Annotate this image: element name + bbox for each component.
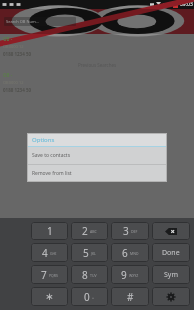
staticText: Done [162,248,180,258]
staticText: Previous Searches [78,62,117,68]
staticText: OB - [3,36,13,42]
staticText: Sym [164,270,178,280]
staticText: Remove from list [32,170,72,177]
staticText: MNO [130,251,139,256]
staticText: ABC [90,229,97,234]
button[interactable]: Save to contacts [27,147,167,164]
staticText: DEF [131,229,138,234]
button[interactable]: Remove from list [27,165,167,182]
staticText: ∗ [45,291,54,303]
staticText: # [127,290,134,304]
staticText: PQRS [49,273,58,278]
button[interactable]: 4 [31,243,68,262]
staticText: 98% [163,2,171,7]
staticText: 9 [121,268,127,282]
button[interactable]: Done [152,243,190,262]
staticText: 8 [82,268,88,282]
button[interactable]: Keyboard settings [152,287,190,306]
staticText: GHI [50,251,57,256]
button[interactable]: 6 [111,243,149,262]
staticText: 0188 1234 50 [3,51,32,57]
staticText: 7 [41,268,47,282]
staticText: Options [32,136,55,144]
button[interactable]: Search OB Num... [4,17,76,26]
staticText: TUV [90,273,97,278]
button[interactable]: ∗ [31,287,68,306]
button[interactable]: 0 [71,287,108,306]
staticText: 6 [122,246,128,260]
button[interactable]: 7 [31,265,68,284]
button[interactable]: 2 [71,222,108,240]
button[interactable]: Backspace [152,222,190,240]
button[interactable]: OB - [0,34,194,59]
staticText: JKL [91,251,96,256]
button[interactable]: 3 [111,222,149,240]
staticText: OB0000 12 [3,44,24,49]
staticText: 1 [47,224,53,238]
staticText: 4 [42,246,48,260]
staticText: Save to contacts [32,152,71,159]
staticText: 2 [82,224,88,238]
staticText: 5 [83,246,89,260]
staticText: + [92,295,95,300]
button[interactable]: # [111,287,149,306]
button[interactable]: 1 [31,222,68,240]
staticText: WXYZ [129,273,139,278]
staticText: Search OB Num... [6,19,39,24]
staticText: OB - [3,72,13,78]
button[interactable]: 9 [111,265,149,284]
staticText: 0 [84,290,90,304]
button[interactable]: 5 [71,243,108,262]
button[interactable]: 8 [71,265,108,284]
button[interactable]: Sym [152,265,190,284]
staticText: 09:03 [180,1,193,8]
staticText: 3 [123,224,129,238]
staticText: 0188 1234 50 [3,87,32,93]
